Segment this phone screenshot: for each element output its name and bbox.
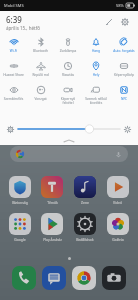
button[interactable]: Zseblámpa	[54, 35, 82, 59]
button[interactable]: Szemkímélés	[0, 83, 27, 107]
button[interactable]: NFC	[110, 83, 138, 107]
button[interactable]: Hely	[82, 59, 110, 83]
staticText: Galéria	[112, 237, 124, 242]
staticText: Témák	[47, 200, 58, 205]
button[interactable]: Chrome	[72, 266, 96, 290]
staticText: Zene	[81, 200, 89, 205]
staticText: 58%	[116, 3, 124, 8]
button[interactable]: Google	[4, 213, 36, 242]
staticText: Biztonság	[12, 200, 28, 205]
button[interactable]: Play Áruház	[36, 213, 68, 242]
staticText: Beállítások	[76, 237, 94, 242]
staticText: április 15., hétfő	[6, 25, 40, 31]
staticText: Hely	[83, 73, 109, 77]
staticText: Repülő md	[28, 73, 53, 77]
button[interactable]: Üzenetek	[42, 266, 66, 290]
staticText: NFC	[111, 97, 137, 101]
button[interactable]: Zene	[68, 176, 101, 205]
button[interactable]: Repülő md	[27, 59, 54, 83]
staticText: Képernyő felvétel	[55, 97, 81, 105]
button[interactable]: Biztonság	[4, 176, 36, 205]
staticText: Vonzgat	[28, 97, 53, 101]
button[interactable]: Témák	[36, 176, 68, 205]
button[interactable]: Riasztás	[54, 59, 82, 83]
button[interactable]: Huawei Share	[0, 59, 27, 83]
staticText: Riasztás	[55, 73, 81, 77]
staticText: Bluetooth	[28, 49, 53, 53]
button[interactable]: Beállítások	[68, 213, 101, 242]
button[interactable]	[10, 146, 128, 162]
staticText: Auto. forgatás	[111, 49, 137, 53]
staticText: Videó	[113, 200, 122, 205]
staticText: Wi-Fi	[1, 49, 26, 53]
staticText: 6:39	[6, 14, 22, 25]
button[interactable]: Vonzgat	[27, 83, 54, 107]
button[interactable]: Beállítások	[118, 15, 132, 29]
button[interactable]: Videó	[101, 176, 134, 205]
staticText: Hang	[83, 49, 109, 53]
staticText: Mobil SMS	[4, 3, 24, 8]
staticText: Képernyőkép	[111, 73, 137, 77]
staticText: Szemkímélés	[1, 97, 26, 101]
button[interactable]: Hang	[82, 35, 110, 59]
staticText: Play Áruház	[43, 237, 62, 242]
button[interactable]: Bluetooth	[27, 35, 54, 59]
staticText: Google	[14, 237, 26, 242]
button[interactable]: Összecsukás	[0, 137, 138, 145]
staticText: Szemek nélkül kivetítés	[83, 97, 109, 105]
button[interactable]	[18, 121, 120, 137]
button[interactable]: Képernyő felvétel	[54, 83, 82, 107]
button[interactable]: Galéria	[101, 213, 134, 242]
staticText: Huawei Share	[1, 73, 26, 77]
button[interactable]: Auto. forgatás	[110, 35, 138, 59]
staticText: Zseblámpa	[55, 49, 81, 53]
button[interactable]: Szerkesztés	[102, 15, 116, 29]
button[interactable]: Telefon	[12, 266, 36, 290]
button[interactable]: Szemek nélkül kivetítés	[82, 83, 110, 107]
button[interactable]: Képernyőkép	[110, 59, 138, 83]
button[interactable]: Kamera	[102, 266, 126, 290]
button[interactable]: Wi-Fi	[0, 35, 27, 59]
